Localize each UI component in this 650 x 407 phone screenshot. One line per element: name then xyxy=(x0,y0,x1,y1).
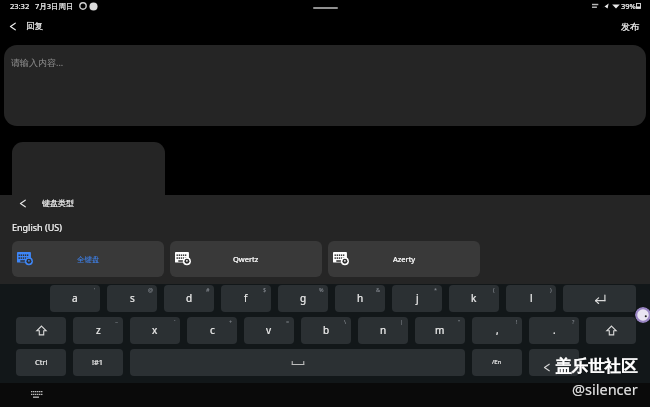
staticText: a xyxy=(72,291,78,305)
staticText: c xyxy=(210,323,215,337)
staticText: h xyxy=(357,291,364,305)
button[interactable]: Azerty xyxy=(328,241,480,277)
button[interactable]: s xyxy=(107,285,157,312)
staticText: @ xyxy=(148,286,153,293)
staticText: k xyxy=(471,291,477,305)
staticText: . xyxy=(553,323,556,337)
button[interactable]: 请输入内容... xyxy=(4,45,646,126)
staticText: # xyxy=(206,286,210,293)
staticText: g xyxy=(300,291,307,305)
button[interactable]: Hide keyboard xyxy=(31,391,42,398)
staticText: $ xyxy=(263,286,267,293)
button[interactable]: Back xyxy=(11,192,33,214)
button[interactable]: m xyxy=(415,317,465,344)
button[interactable]: b xyxy=(301,317,351,344)
button[interactable]: Shift xyxy=(16,317,66,344)
button[interactable]: v xyxy=(244,317,294,344)
other: Enter xyxy=(593,292,607,306)
button[interactable]: z xyxy=(73,317,123,344)
staticText: ! xyxy=(516,318,518,325)
staticText: Qwertz xyxy=(233,254,259,264)
button[interactable]: l xyxy=(506,285,556,312)
button[interactable]: 全键盘 xyxy=(12,241,164,277)
button[interactable]: g xyxy=(278,285,328,312)
button[interactable]: a xyxy=(50,285,100,312)
staticText: l xyxy=(530,291,533,305)
button[interactable] xyxy=(529,349,579,376)
button[interactable]: c xyxy=(187,317,237,344)
staticText: s xyxy=(130,291,135,305)
staticText: + xyxy=(229,318,233,325)
button[interactable]: j xyxy=(392,285,442,312)
staticText: | xyxy=(400,318,404,325)
button[interactable]: . xyxy=(529,317,579,344)
button[interactable]: !#1 xyxy=(73,349,123,376)
staticText: n xyxy=(380,323,387,337)
staticText: , xyxy=(496,323,499,337)
staticText: ' xyxy=(94,286,96,293)
staticText: d xyxy=(186,291,193,305)
button[interactable]: , xyxy=(472,317,522,344)
staticText: 23:32 xyxy=(10,1,30,11)
button[interactable]: h xyxy=(335,285,385,312)
staticText: @silencer xyxy=(572,379,638,399)
staticText: z xyxy=(96,323,101,337)
button[interactable]: f xyxy=(221,285,271,312)
button[interactable]: k xyxy=(449,285,499,312)
staticText: b xyxy=(323,323,330,337)
staticText: j xyxy=(416,291,419,305)
staticText: f xyxy=(244,291,248,305)
staticText: English (US) xyxy=(12,221,62,233)
other: Shift xyxy=(605,324,618,337)
staticText: Azerty xyxy=(393,254,416,264)
other: Space xyxy=(289,354,307,372)
button[interactable]: Qwertz xyxy=(170,241,322,277)
staticText: * xyxy=(434,286,438,293)
button[interactable]: /En xyxy=(472,349,522,376)
staticText: 键盘类型 xyxy=(42,198,74,208)
staticText: 发布 xyxy=(621,21,639,32)
staticText: 回复 xyxy=(26,21,43,32)
button[interactable]: Back xyxy=(1,15,23,37)
staticText: = xyxy=(286,318,290,325)
staticText: v xyxy=(266,323,272,337)
button[interactable]: Space xyxy=(130,349,465,376)
staticText: 请输入内容... xyxy=(11,56,64,68)
staticText: 7月3日周日 xyxy=(35,1,74,11)
staticText: ` xyxy=(174,318,176,325)
staticText: !#1 xyxy=(92,357,104,367)
button[interactable]: n xyxy=(358,317,408,344)
staticText: ( xyxy=(493,286,495,293)
button[interactable]: Ctrl xyxy=(16,349,66,376)
button[interactable]: Enter xyxy=(563,285,636,312)
button[interactable]: Shift xyxy=(586,317,636,344)
button[interactable]: x xyxy=(130,317,180,344)
button[interactable]: d xyxy=(164,285,214,312)
staticText: \ xyxy=(344,318,347,325)
staticText: 全键盘 xyxy=(77,255,100,264)
staticText: m xyxy=(435,323,445,337)
staticText: & xyxy=(376,286,381,293)
staticText: % xyxy=(319,286,324,293)
staticText: " xyxy=(458,318,461,325)
staticText: Ctrl xyxy=(35,357,48,367)
staticText: ? xyxy=(572,318,575,325)
staticText: x xyxy=(152,323,158,337)
staticText: 39% xyxy=(621,1,636,11)
staticText: /En xyxy=(492,358,502,366)
staticText: 盖乐世社区 xyxy=(555,356,638,377)
staticText: ) xyxy=(550,286,552,293)
other: Shift xyxy=(35,324,48,337)
staticText: ~ xyxy=(115,318,119,325)
button[interactable]: 发布 xyxy=(610,11,650,41)
button[interactable]: Assistant xyxy=(635,307,650,323)
